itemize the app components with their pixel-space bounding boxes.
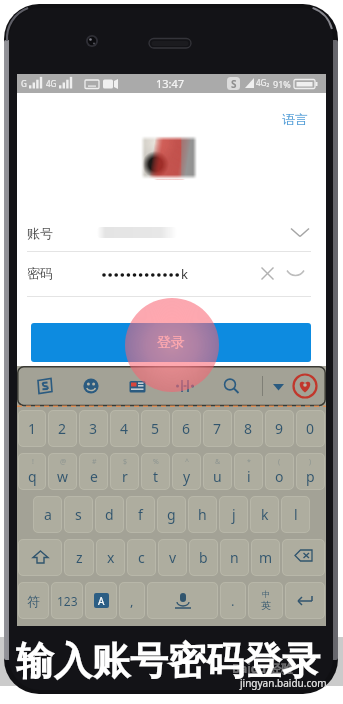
staticText: p [306,467,315,486]
staticText: 英 [261,599,271,612]
button[interactable]: x [96,539,125,576]
staticText: c [138,548,145,567]
staticText: 0 [306,419,315,438]
button[interactable]: @ [48,453,77,490]
staticText: i [247,467,251,486]
staticText: 123 [57,593,78,609]
button[interactable]: c [127,539,156,576]
button[interactable]: s [64,496,93,533]
button[interactable]: Sogou [30,371,60,401]
button[interactable]: Emoji [76,371,106,401]
button[interactable]: , [119,582,145,619]
button[interactable]: A [85,582,117,619]
staticText: , [130,592,134,610]
staticText: ) [309,457,312,467]
button[interactable]: 123 [51,582,83,619]
button[interactable]: ( [265,453,294,490]
staticText: 91% [273,78,291,90]
button[interactable]: l [281,496,310,533]
staticText: 8 [244,419,253,438]
staticText: 4G₂ [256,77,270,88]
button[interactable]: 1 [18,410,46,447]
button[interactable]: * [234,453,263,490]
button[interactable]: f [126,496,155,533]
staticText: s [75,505,82,524]
staticText: k [261,505,269,524]
staticText: 中 [262,589,270,599]
button[interactable]: 2 [48,410,77,447]
button[interactable]: ) [296,453,325,490]
button[interactable]: 0 [296,410,325,447]
button[interactable]: g [157,496,186,533]
staticText: h [198,505,207,524]
button[interactable]: 5 [141,410,170,447]
staticText: 9 [275,419,284,438]
staticText: ( [278,457,281,467]
button[interactable] [18,539,62,576]
button[interactable]: d [95,496,124,533]
button[interactable]: 6 [172,410,201,447]
staticText: 5 [151,419,160,438]
button[interactable] [282,539,325,576]
staticText: 4G [46,78,57,89]
staticText: 13:47 [156,76,185,91]
button[interactable]: v [158,539,187,576]
button[interactable]: Toolbox [122,371,152,401]
button[interactable]: b [189,539,218,576]
staticText: 2 [58,419,67,438]
staticText: jingyan.baidu.com [240,676,327,690]
button[interactable] [147,582,218,619]
staticText: j [232,505,236,524]
button[interactable]: . [220,582,246,619]
button[interactable]: 9 [265,410,294,447]
button[interactable]: 密码 [17,252,326,297]
button[interactable]: 8 [234,410,263,447]
staticText: w [57,467,69,486]
button[interactable]: Clear password [255,261,279,285]
button[interactable]: 语言 [282,111,308,127]
staticText: o [275,467,284,486]
button[interactable]: h [188,496,217,533]
staticText: v [169,548,177,567]
staticText: 输入账号密码登录 [16,637,320,685]
button[interactable]: Move cursor [170,371,200,401]
staticText: 6 [182,419,191,438]
staticText: & [215,457,221,467]
button[interactable]: 登录 [31,323,311,362]
button[interactable]: 3 [79,410,108,447]
button[interactable]: 符 [18,582,49,619]
button[interactable]: & [203,453,232,490]
button[interactable]: 4 [110,410,139,447]
staticText: A [98,594,105,608]
staticText: a [44,505,52,524]
staticText: r [122,467,128,486]
button[interactable]: ^ [172,453,201,490]
button[interactable]: # [79,453,108,490]
button[interactable]: ! [18,453,46,490]
button[interactable]: m [251,539,280,576]
button[interactable]: Sogou logo [290,371,320,401]
button[interactable]: k [250,496,279,533]
staticText: ^ [185,457,190,467]
button[interactable]: 7 [203,410,232,447]
button[interactable]: 中 [248,582,283,619]
button[interactable]: j [219,496,248,533]
button[interactable]: 账号 [17,214,326,252]
button[interactable]: $ [110,453,139,490]
staticText: y [183,467,191,486]
button[interactable]: % [141,453,170,490]
button[interactable]: More [263,371,293,401]
staticText: 语言 [282,111,308,127]
staticText: u [213,467,222,486]
staticText: k [181,265,188,283]
button[interactable]: Show password [283,260,309,286]
button[interactable]: Search [216,371,246,401]
button[interactable]: n [220,539,249,576]
button[interactable] [285,582,325,619]
staticText: Baidu 经验 [232,660,294,676]
button[interactable]: z [64,539,94,576]
button[interactable]: a [33,496,62,533]
staticText: l [294,505,298,524]
staticText: 4 [120,419,129,438]
button[interactable]: Select account [286,219,314,247]
